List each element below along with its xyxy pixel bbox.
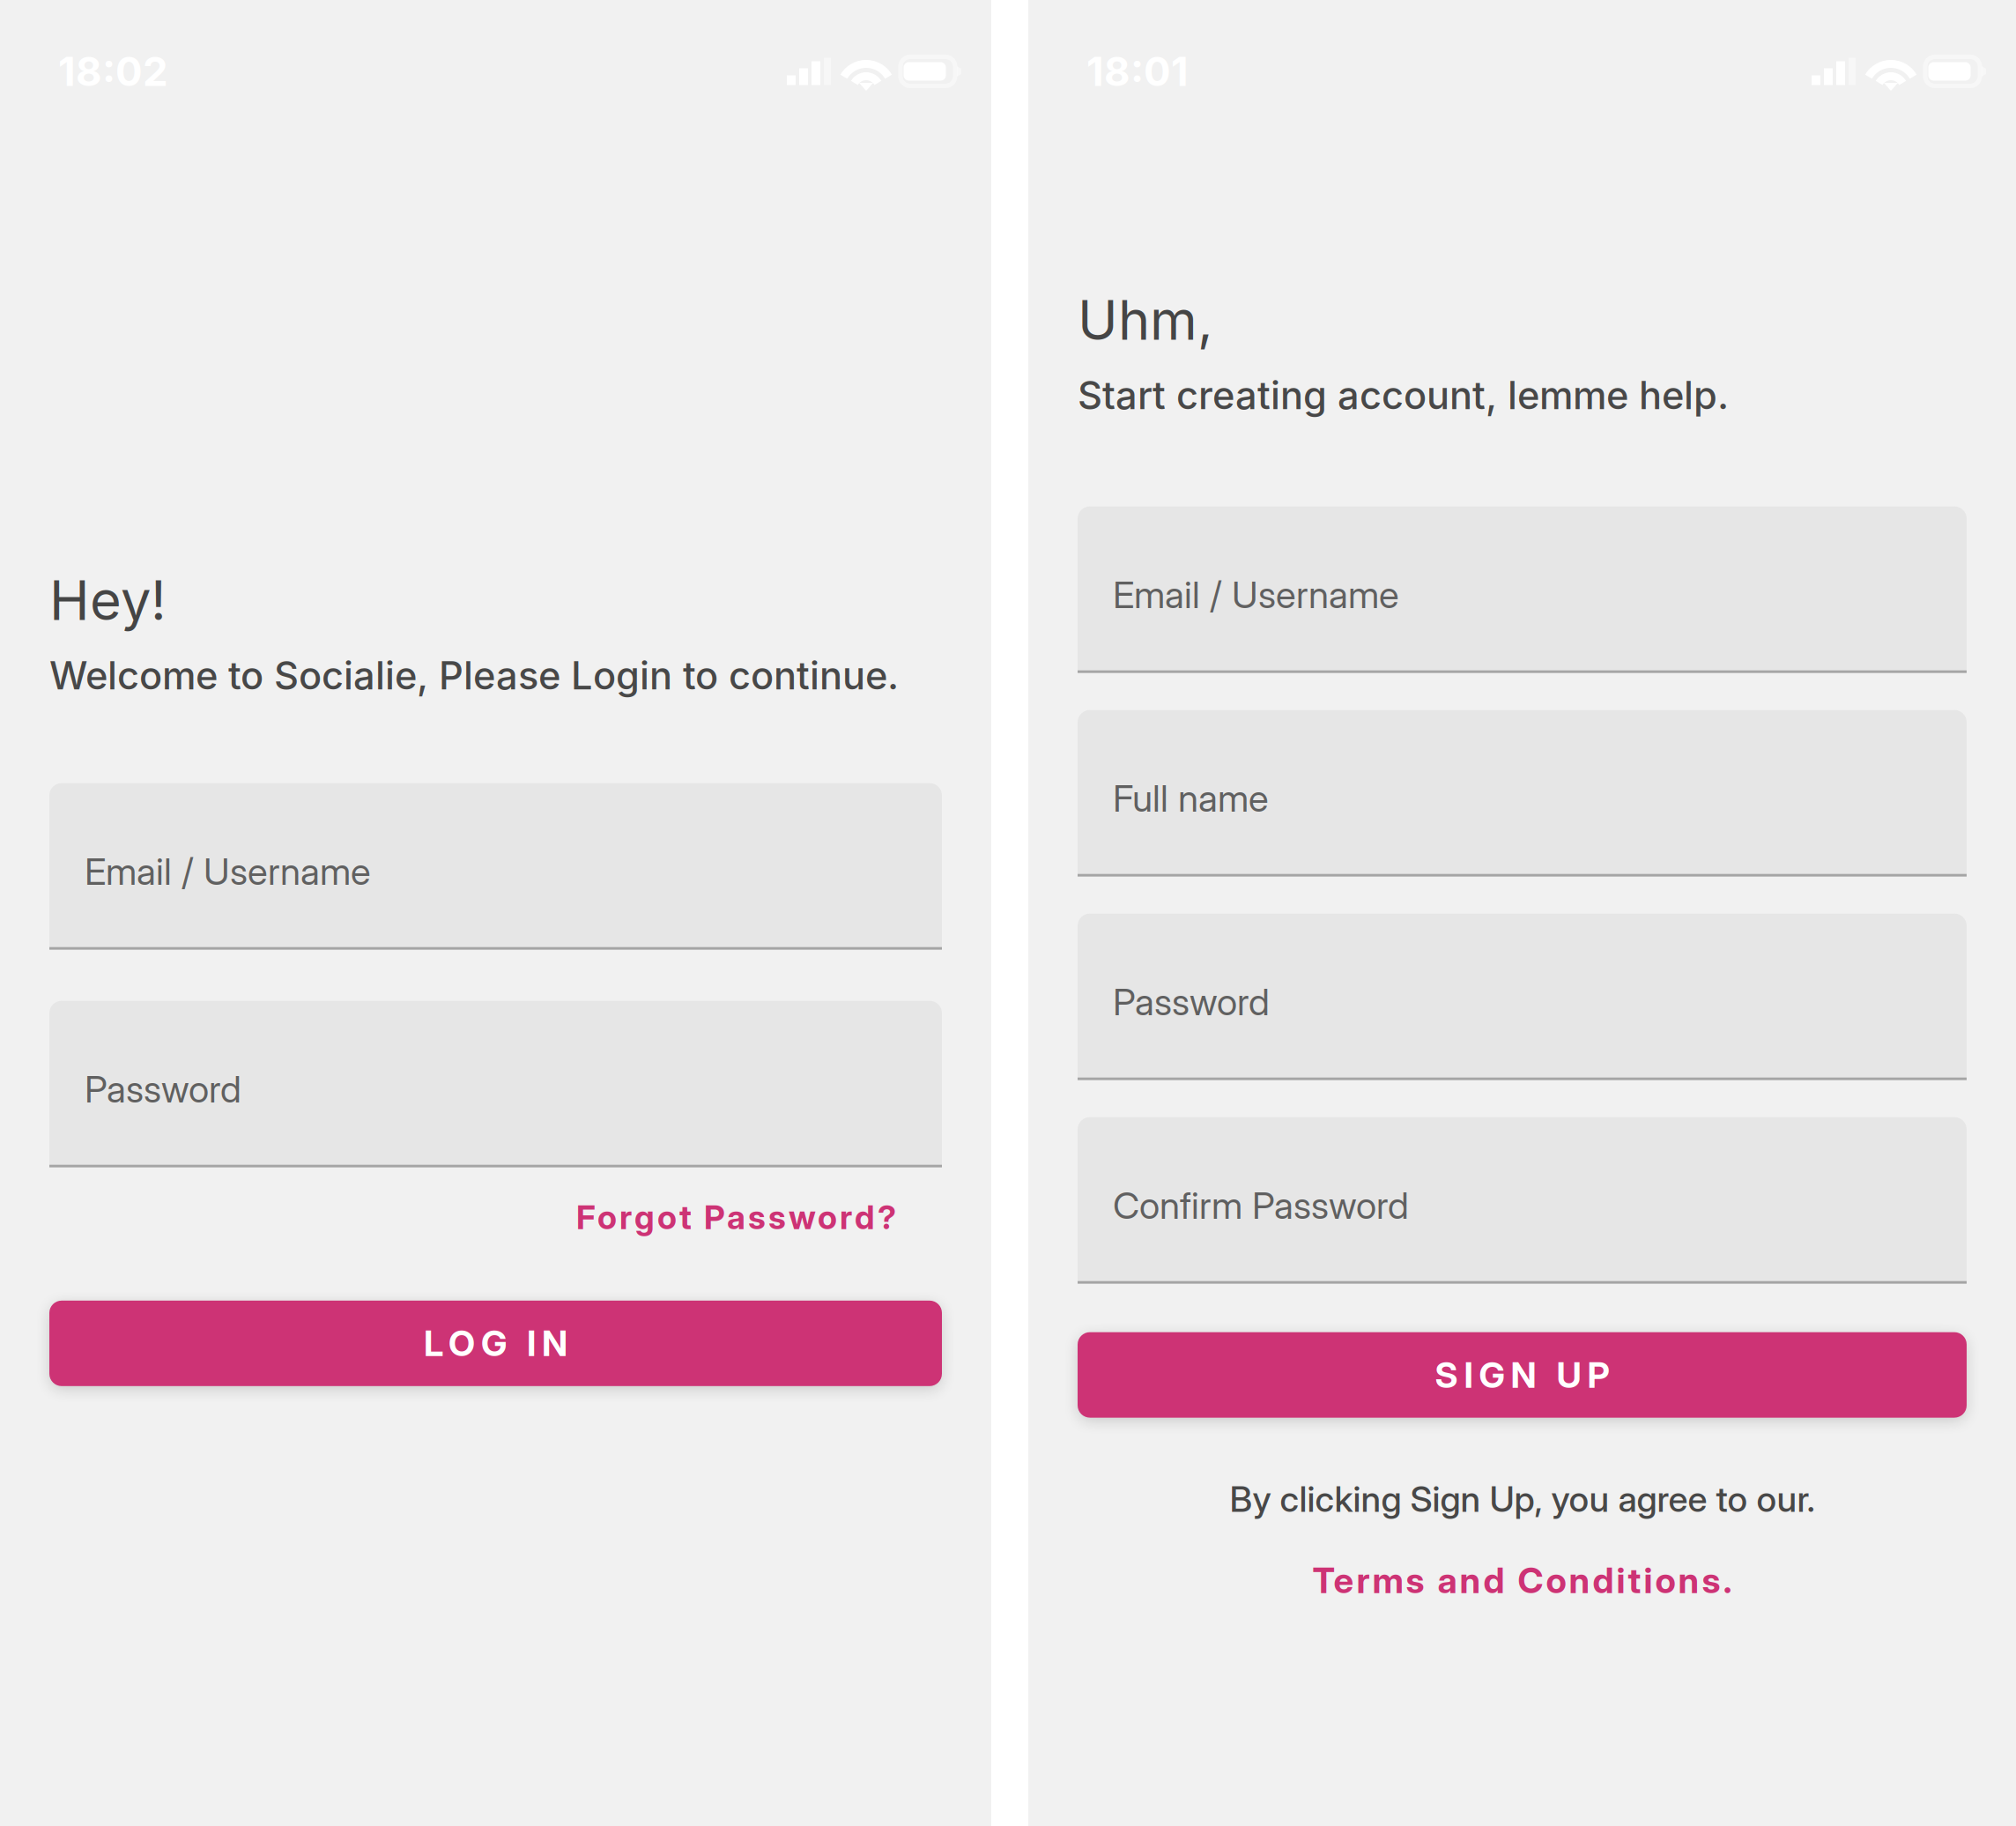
button[interactable]: LOG IN: [49, 1301, 942, 1386]
staticText: Password: [1113, 979, 1270, 1024]
button[interactable]: Forgot Password?: [576, 1197, 942, 1237]
staticText: Hey!: [49, 568, 167, 633]
staticText: Confirm Password: [1113, 1183, 1409, 1228]
staticText: By clicking Sign Up, you agree to our.: [1230, 1478, 1815, 1520]
staticText: Password: [85, 1067, 241, 1111]
staticText: LOG IN: [424, 1322, 567, 1365]
staticText: Uhm,: [1078, 287, 1213, 353]
staticText: Email / Username: [85, 849, 371, 894]
button[interactable]: Terms and Conditions.: [1312, 1559, 1732, 1602]
button[interactable]: Password: [1078, 914, 1967, 1080]
staticText: Forgot Password?: [576, 1197, 896, 1237]
staticText: Email / Username: [1113, 572, 1399, 617]
staticText: Full name: [1113, 776, 1269, 820]
button[interactable]: Confirm Password: [1078, 1117, 1967, 1284]
staticText: 18:01: [1086, 47, 1189, 96]
staticText: SIGN UP: [1435, 1354, 1609, 1396]
staticText: Terms and Conditions.: [1312, 1559, 1732, 1602]
staticText: Welcome to Socialie, Please Login to con…: [49, 652, 899, 698]
staticText: 18:02: [58, 47, 168, 96]
button[interactable]: Email / Username: [49, 783, 942, 950]
button[interactable]: Password: [49, 1001, 942, 1167]
button[interactable]: Full name: [1078, 710, 1967, 877]
staticText: Start creating account, lemme help.: [1078, 372, 1729, 418]
button[interactable]: SIGN UP: [1078, 1332, 1967, 1418]
button[interactable]: Email / Username: [1078, 506, 1967, 673]
